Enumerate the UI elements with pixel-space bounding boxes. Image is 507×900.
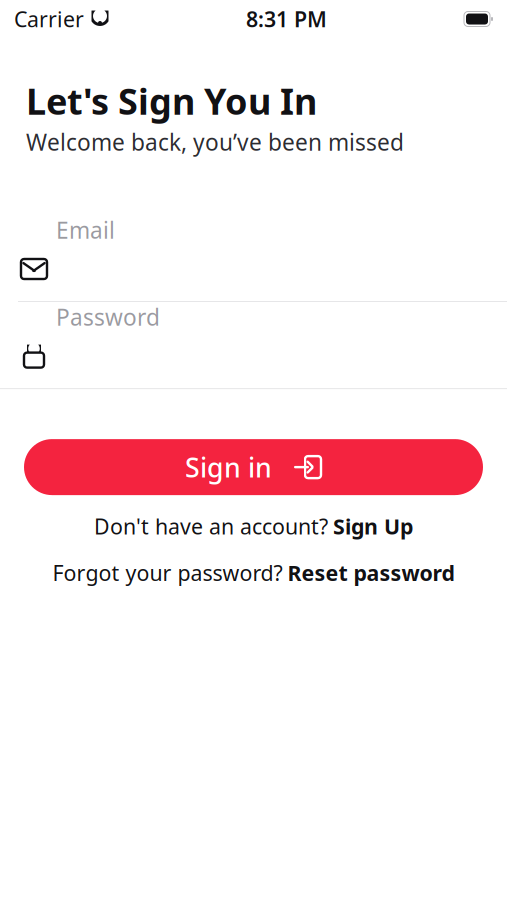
staticText: 8:31 PM: [246, 5, 327, 33]
staticText: Sign Up: [333, 512, 413, 540]
button[interactable]: Sign in: [24, 439, 483, 495]
staticText: Email: [56, 215, 115, 245]
button[interactable]: Forgot your password?: [0, 555, 507, 590]
staticText: Reset password: [287, 558, 454, 587]
staticText: Carrier: [14, 5, 84, 33]
staticText: Password: [56, 302, 160, 332]
staticText: Don't have an account?: [94, 512, 328, 540]
staticText: Let's Sign You In: [26, 77, 317, 125]
button[interactable]: Don't have an account?: [0, 509, 507, 543]
staticText: Welcome back, you’ve been missed: [26, 127, 404, 157]
staticText: Forgot your password?: [52, 558, 282, 587]
staticText: Sign in: [185, 449, 272, 485]
